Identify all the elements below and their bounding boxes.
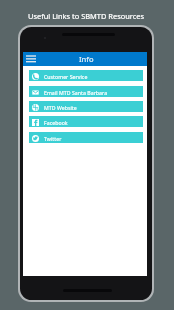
staticText: Info: [79, 54, 94, 64]
button[interactable]: Twitter: [29, 132, 143, 143]
staticText: Useful Links to SBMTD Resources: [0, 11, 173, 21]
button[interactable]: MTD Website: [29, 101, 143, 112]
staticText: Facebook: [44, 119, 68, 126]
button[interactable]: Open navigation menu: [25, 53, 36, 65]
staticText: Email MTD Santa Barbara: [44, 89, 108, 96]
staticText: MTD Website: [44, 104, 77, 111]
staticText: Customer Service: [44, 73, 88, 80]
button[interactable]: Email MTD Santa Barbara: [29, 86, 143, 97]
button[interactable]: Customer Service: [29, 70, 143, 81]
staticText: Twitter: [44, 135, 62, 142]
button[interactable]: Facebook: [29, 116, 143, 127]
